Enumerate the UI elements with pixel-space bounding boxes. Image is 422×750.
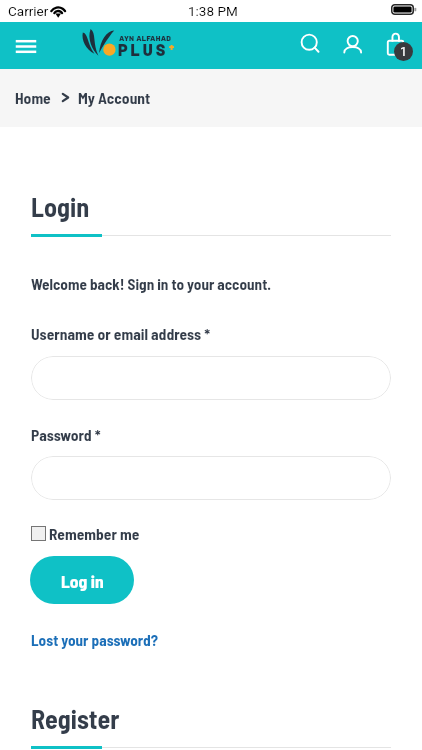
button[interactable]: Search [293, 31, 325, 63]
staticText: Carrier [8, 3, 49, 19]
button[interactable]: Cart [382, 31, 418, 67]
staticText: My Account [78, 88, 151, 107]
button[interactable]: Log in [30, 556, 134, 604]
staticText: Lost your password? [31, 631, 158, 649]
button[interactable]: Menu [9, 33, 41, 65]
staticText: Remember me [49, 524, 140, 543]
staticText: Register [31, 703, 120, 734]
staticText: Welcome back! Sign in to your account. [31, 275, 271, 293]
button[interactable]: Home [15, 88, 51, 107]
staticText: 1 [400, 44, 408, 59]
staticText: 1:38 PM [188, 3, 238, 19]
button[interactable] [31, 356, 391, 400]
staticText: Username or email address * [31, 324, 211, 343]
staticText: Log in [61, 570, 104, 591]
button[interactable]: Account [337, 31, 369, 63]
staticText: Password * [31, 425, 101, 444]
button[interactable]: Lost your password? [31, 631, 158, 649]
staticText: Login [31, 191, 90, 222]
button[interactable] [31, 456, 391, 500]
staticText: PLUS [118, 40, 169, 59]
staticText: Home [15, 88, 51, 107]
button[interactable]: Remember me [31, 524, 140, 543]
staticText: AYN ALFAHAD [119, 33, 172, 42]
staticText: + [169, 40, 175, 53]
